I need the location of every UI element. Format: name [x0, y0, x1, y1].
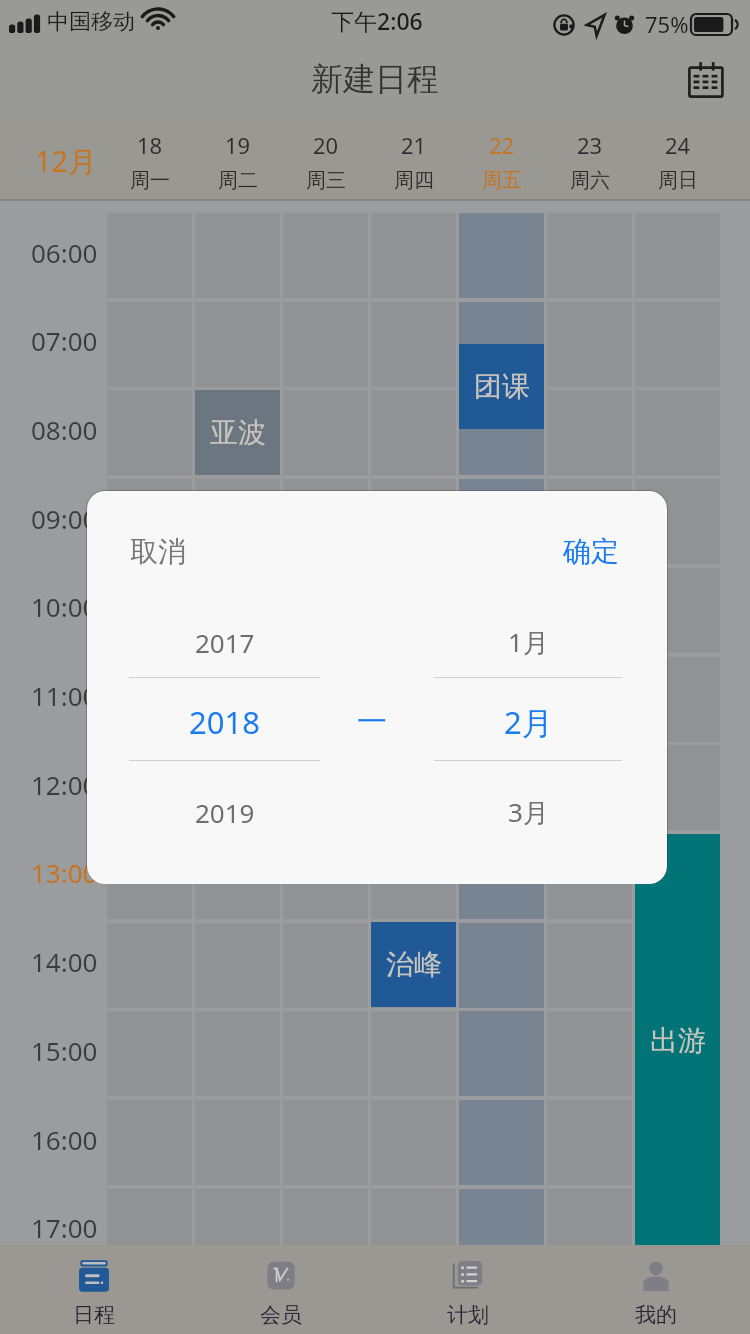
button[interactable]: 2月	[434, 692, 622, 752]
button[interactable]: 取消	[98, 519, 218, 583]
button[interactable]	[107, 657, 192, 742]
button[interactable]	[547, 657, 632, 742]
button[interactable]	[107, 479, 192, 564]
button[interactable]: 计划	[374, 1245, 562, 1334]
button[interactable]: 12月	[35, 141, 98, 181]
button[interactable]	[459, 479, 544, 564]
button[interactable]	[195, 657, 280, 742]
button[interactable]: Calendar view	[678, 51, 734, 107]
button[interactable]: 我的	[562, 1245, 750, 1334]
button[interactable]	[195, 745, 280, 830]
button[interactable]: 日程	[0, 1245, 187, 1334]
button[interactable]: 出游	[635, 834, 720, 1246]
button[interactable]: 2017	[129, 612, 320, 672]
button[interactable]	[371, 923, 456, 1008]
button[interactable]	[635, 834, 720, 919]
button[interactable]	[547, 745, 632, 830]
button[interactable]: 2018	[129, 692, 320, 752]
button[interactable]: 3月	[434, 782, 622, 842]
button[interactable]	[371, 834, 456, 919]
button[interactable]	[547, 834, 632, 919]
button[interactable]	[371, 479, 456, 564]
button[interactable]: 1月	[434, 612, 622, 672]
button[interactable]	[459, 302, 544, 387]
button[interactable]: 治峰	[371, 922, 456, 1007]
button[interactable]: 2019	[129, 782, 320, 842]
button[interactable]	[635, 657, 720, 742]
button[interactable]	[107, 745, 192, 830]
button[interactable]	[459, 568, 544, 653]
button[interactable]: 确定	[531, 519, 651, 583]
button[interactable]: 亚波	[195, 390, 280, 475]
button[interactable]	[459, 657, 544, 742]
button[interactable]	[195, 390, 280, 475]
button[interactable]	[195, 479, 280, 564]
button[interactable]	[195, 834, 280, 919]
button[interactable]: 23	[547, 118, 632, 200]
button[interactable]: 19	[195, 118, 280, 200]
button[interactable]: 20	[283, 118, 368, 200]
button[interactable]	[635, 568, 720, 653]
button[interactable]	[371, 657, 456, 742]
button[interactable]: 18	[107, 118, 192, 200]
button[interactable]	[283, 479, 368, 564]
button[interactable]	[547, 479, 632, 564]
button[interactable]	[283, 834, 368, 919]
button[interactable]	[195, 568, 280, 653]
button[interactable]: 22	[459, 118, 544, 200]
button[interactable]: 21	[371, 118, 456, 200]
button[interactable]: 会员	[187, 1245, 374, 1334]
button[interactable]	[459, 390, 544, 475]
button[interactable]	[635, 1011, 720, 1096]
button[interactable]	[107, 834, 192, 919]
button[interactable]	[459, 834, 544, 919]
